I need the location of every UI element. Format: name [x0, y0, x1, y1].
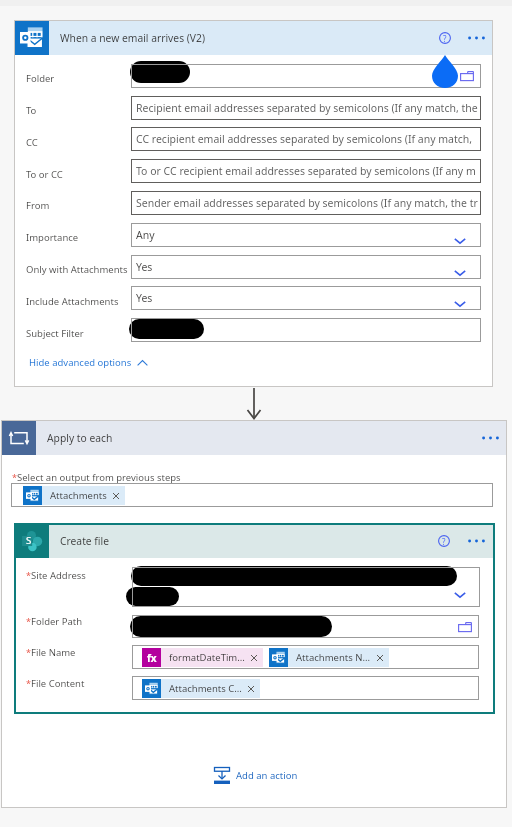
staticText: * — [12, 471, 17, 483]
button[interactable]: When a new email arrives (V2) — [14, 20, 493, 55]
staticText: When a new email arrives (V2) — [60, 31, 206, 45]
button[interactable]: Pick folder — [132, 615, 479, 638]
staticText: Only with Attachments — [26, 263, 128, 276]
staticText: Attachments N... — [296, 651, 371, 664]
staticText: ? — [443, 33, 447, 44]
staticText: Create file — [60, 534, 110, 548]
button[interactable]: More options — [466, 531, 486, 551]
staticText: Yes — [136, 291, 153, 305]
button[interactable]: Help — [434, 531, 454, 551]
button[interactable]: More options — [480, 428, 500, 448]
staticText: Attachments C... — [169, 682, 242, 695]
staticText: * — [26, 646, 31, 658]
staticText: Hide advanced options — [29, 356, 132, 369]
button[interactable]: Attachments — [23, 486, 125, 505]
button[interactable]: Recipient email addresses separated by s… — [131, 96, 481, 120]
staticText: Sender email addresses separated by semi… — [136, 196, 478, 210]
button[interactable]: Any — [131, 223, 481, 247]
button[interactable]: CC recipient email addresses separated b… — [131, 127, 481, 151]
staticText: Add an action — [236, 769, 298, 782]
staticText: To — [26, 104, 37, 117]
staticText: Include Attachments — [26, 295, 119, 308]
staticText: Recipient email addresses separated by s… — [136, 101, 478, 115]
button[interactable]: To or CC recipient email addresses separ… — [131, 159, 481, 183]
staticText: From — [26, 199, 50, 212]
button[interactable]: More options — [466, 28, 486, 48]
staticText: Importance — [26, 231, 79, 244]
button[interactable]: Attachments C... — [142, 679, 260, 698]
staticText: ? — [442, 536, 446, 547]
button[interactable] — [132, 567, 480, 607]
staticText: CC recipient email addresses separated b… — [136, 132, 473, 146]
button[interactable]: Hide advanced options — [29, 356, 148, 369]
staticText: formatDateTim... — [169, 651, 245, 664]
staticText: Apply to each — [47, 431, 113, 445]
button[interactable]: Add an action — [214, 767, 298, 784]
staticText: Folder Path — [31, 615, 83, 628]
button[interactable]: S — [14, 523, 495, 558]
staticText: Site Address — [31, 569, 86, 582]
staticText: Folder — [26, 72, 55, 85]
button[interactable]: fx — [142, 648, 263, 667]
staticText: Attachments — [50, 489, 107, 502]
other: Pick folder — [459, 68, 475, 84]
button[interactable]: fx — [142, 645, 479, 669]
button[interactable]: Pick folder — [131, 64, 481, 88]
staticText: Subject Filter — [26, 327, 84, 340]
button[interactable]: Yes — [131, 255, 481, 279]
other: Pick folder — [457, 619, 473, 635]
button[interactable]: Help — [435, 28, 455, 48]
staticText: Yes — [136, 260, 153, 274]
staticText: Any — [136, 228, 155, 242]
staticText: fx — [147, 651, 157, 665]
staticText: CC — [26, 136, 38, 149]
staticText: File Content — [31, 677, 85, 690]
staticText: To or CC recipient email addresses separ… — [136, 164, 476, 178]
staticText: * — [26, 615, 31, 627]
button[interactable]: Sender email addresses separated by semi… — [131, 191, 481, 215]
staticText: To or CC — [26, 168, 63, 181]
staticText: * — [26, 569, 31, 581]
button[interactable]: Attachments C... — [142, 676, 479, 700]
button[interactable]: Attachments N... — [269, 648, 389, 667]
button[interactable]: Apply to each — [1, 420, 507, 455]
staticText: * — [26, 677, 31, 689]
button[interactable]: Attachments — [11, 483, 493, 507]
staticText: Select an output from previous steps — [17, 471, 181, 484]
button[interactable] — [131, 318, 481, 342]
staticText: S — [26, 534, 32, 547]
button[interactable]: Yes — [131, 286, 481, 310]
staticText: File Name — [31, 646, 76, 659]
